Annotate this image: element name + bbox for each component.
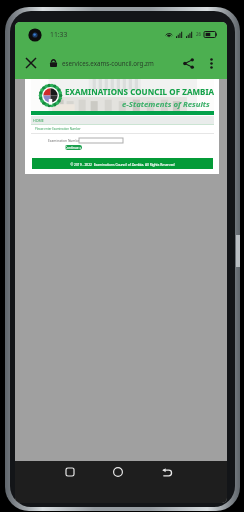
staticText: EXAMINATIONS COUNCIL OF ZAMBIA bbox=[65, 86, 215, 97]
staticText: 26 bbox=[196, 31, 202, 37]
staticText: eservices.exams-council.org.zm bbox=[62, 59, 154, 67]
staticText: Please enter Examination Number bbox=[35, 127, 81, 131]
staticText: Examination Number: bbox=[48, 139, 82, 143]
staticText: © 2019 - 2022 Examinations Council of Za… bbox=[70, 162, 175, 166]
staticText: 11:33 bbox=[50, 30, 68, 39]
button[interactable]: More options bbox=[195, 47, 227, 79]
staticText: HOME bbox=[33, 118, 44, 123]
button[interactable]: Close bbox=[15, 47, 46, 79]
staticText: Continue » bbox=[65, 146, 82, 150]
staticText: e-Statements of Results bbox=[122, 99, 210, 110]
button[interactable]: Recent apps bbox=[60, 462, 80, 482]
button[interactable]: Back bbox=[157, 462, 177, 482]
button[interactable]: Share bbox=[181, 47, 195, 79]
button[interactable]: Continue » bbox=[65, 145, 82, 150]
button[interactable]: Home bbox=[108, 462, 128, 482]
